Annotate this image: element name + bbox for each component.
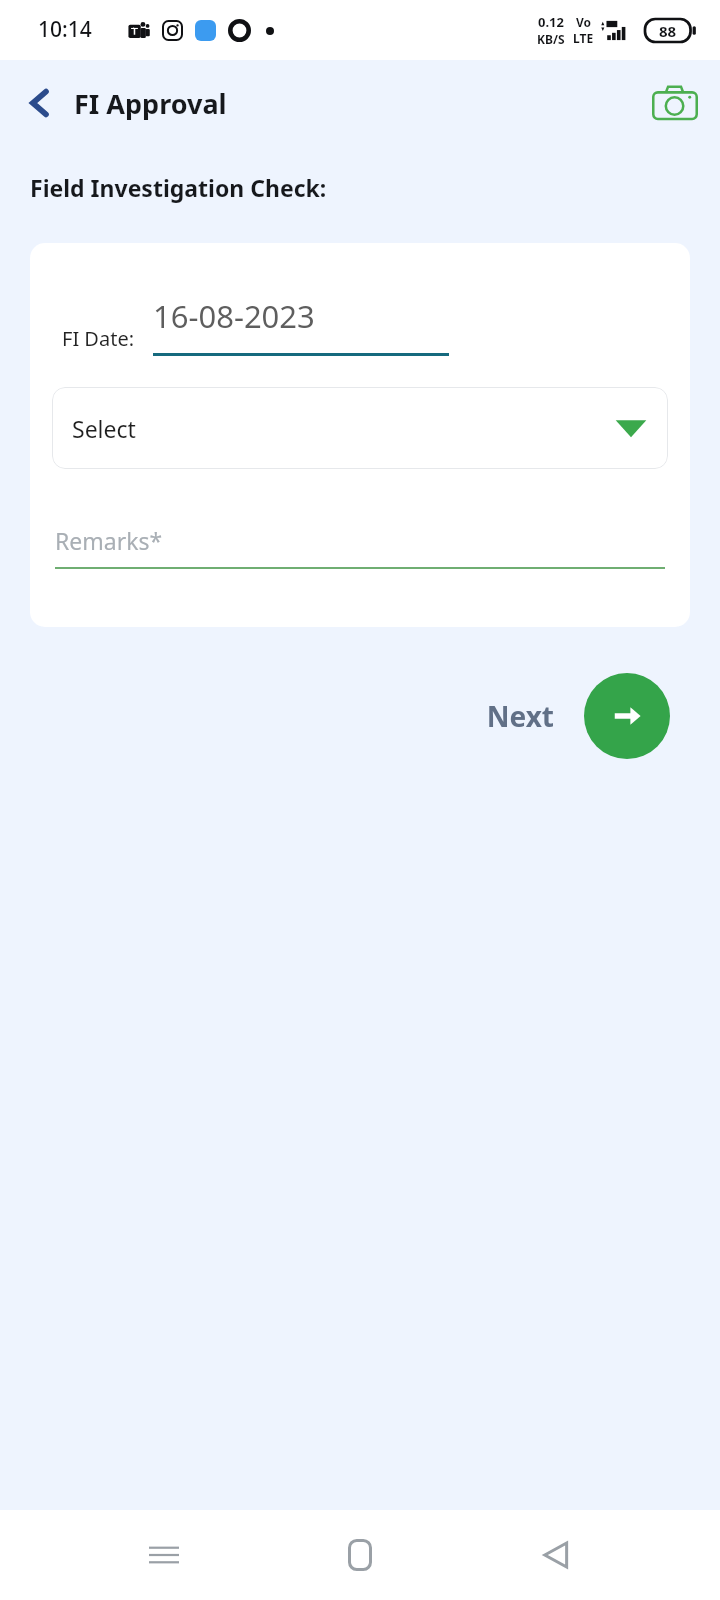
staticText: KB/S — [537, 31, 565, 47]
staticText: 0.12 — [538, 13, 564, 31]
button[interactable]: Camera — [646, 74, 704, 132]
button[interactable]: Remarks* — [55, 525, 665, 569]
button[interactable]: Next — [584, 673, 670, 759]
button[interactable]: 16-08-2023 — [153, 295, 315, 337]
staticText: FI Approval — [74, 85, 227, 122]
button[interactable]: Recent apps — [132, 1523, 196, 1587]
button[interactable]: Next — [478, 689, 562, 743]
button[interactable]: Select — [52, 387, 668, 469]
staticText: Next — [486, 697, 554, 735]
staticText: Remarks* — [55, 525, 163, 556]
button[interactable]: Home — [328, 1523, 392, 1587]
staticText: Field Investigation Check: — [30, 172, 327, 203]
button[interactable]: Back — [524, 1523, 588, 1587]
staticText: Vo — [576, 14, 592, 30]
staticText: LTE — [573, 30, 594, 46]
staticText: FI Date: — [62, 325, 135, 352]
staticText: 10:14 — [38, 15, 92, 44]
staticText: 88 — [659, 21, 677, 41]
button[interactable]: Back — [14, 77, 66, 129]
staticText: Select — [72, 413, 136, 444]
